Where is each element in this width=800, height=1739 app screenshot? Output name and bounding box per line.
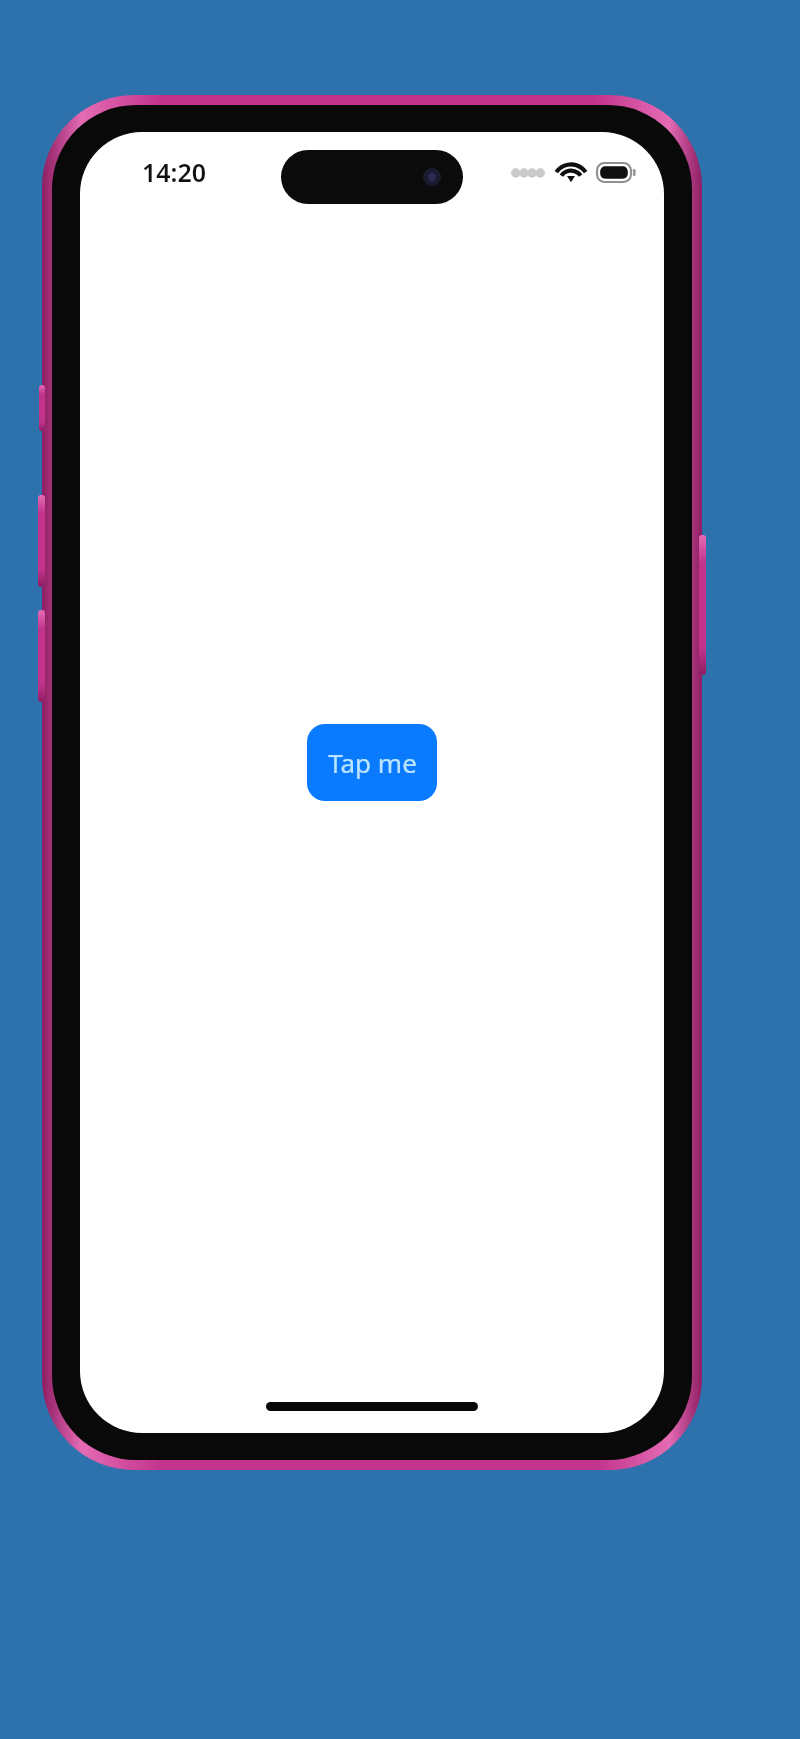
button[interactable]: Tap me [307, 724, 437, 801]
other: Home indicator [266, 1402, 478, 1411]
staticText: Tap me [328, 745, 417, 780]
staticText: 14:20 [142, 155, 207, 189]
